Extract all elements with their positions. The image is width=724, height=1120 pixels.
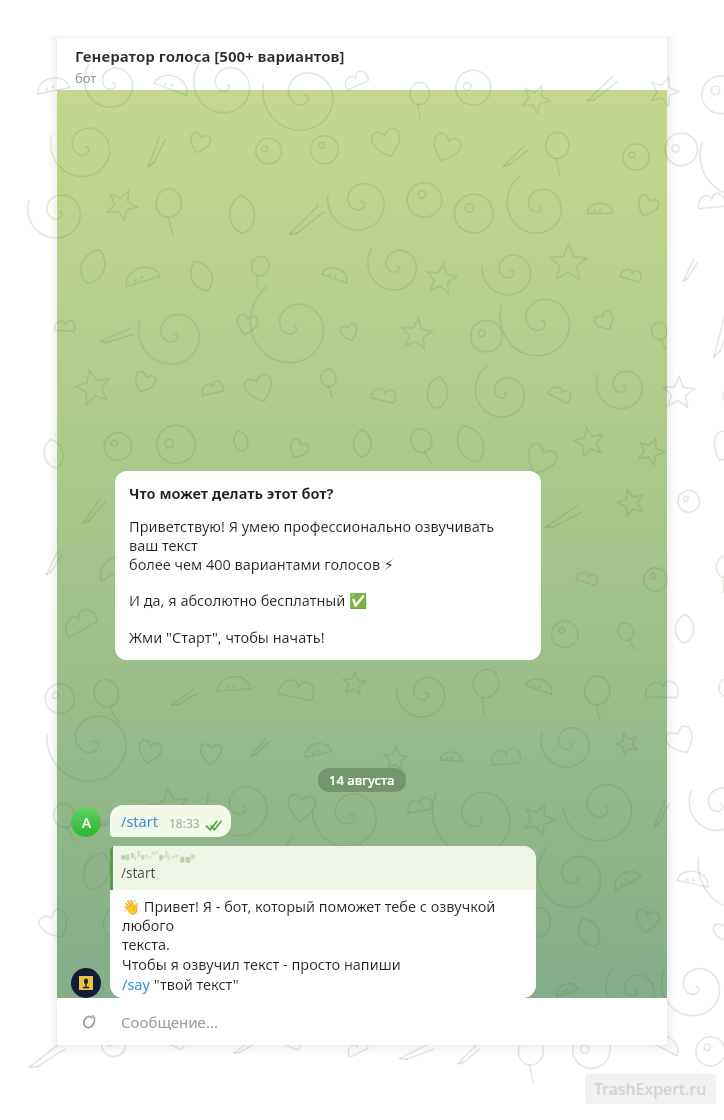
staticText: 14 августа <box>329 771 395 789</box>
button[interactable]: Что может делать этот бот? <box>115 471 541 660</box>
staticText: A <box>82 813 91 832</box>
staticText: Жми "Старт", чтобы начать! <box>129 627 325 647</box>
button[interactable]: Bot avatar <box>71 968 101 998</box>
other: Attach file <box>77 1011 99 1033</box>
staticText: И да, я абсолютно бесплатный ✅ <box>129 590 368 610</box>
staticText: 18:33 <box>169 815 200 831</box>
button[interactable]: /start <box>110 846 536 998</box>
staticText: Приветствую! Я умею профессионально озву… <box>129 516 527 574</box>
staticText: Сообщение... <box>121 1012 218 1032</box>
staticText: 👋 Привет! Я - бот, который поможет тебе … <box>122 896 524 954</box>
staticText: "твой текст" <box>150 974 239 994</box>
button[interactable]: User avatar A <box>71 807 101 837</box>
button[interactable]: 14 августа <box>318 768 406 792</box>
staticText: Генератор голоса [500+ вариантов] <box>75 46 345 66</box>
button[interactable]: /start <box>110 805 231 837</box>
staticText: /start <box>121 864 156 882</box>
staticText: TrashExpert.ru <box>594 1078 707 1100</box>
staticText: /say <box>122 974 150 994</box>
button[interactable]: Генератор голоса [500+ вариантов] <box>57 38 667 90</box>
staticText: Что может делать этот бот? <box>129 483 334 503</box>
staticText: Чтобы я озвучил текст - просто напиши <box>122 954 401 974</box>
staticText: /start <box>121 811 158 831</box>
staticText: бот <box>75 69 97 87</box>
button[interactable]: Attach file <box>57 998 667 1045</box>
